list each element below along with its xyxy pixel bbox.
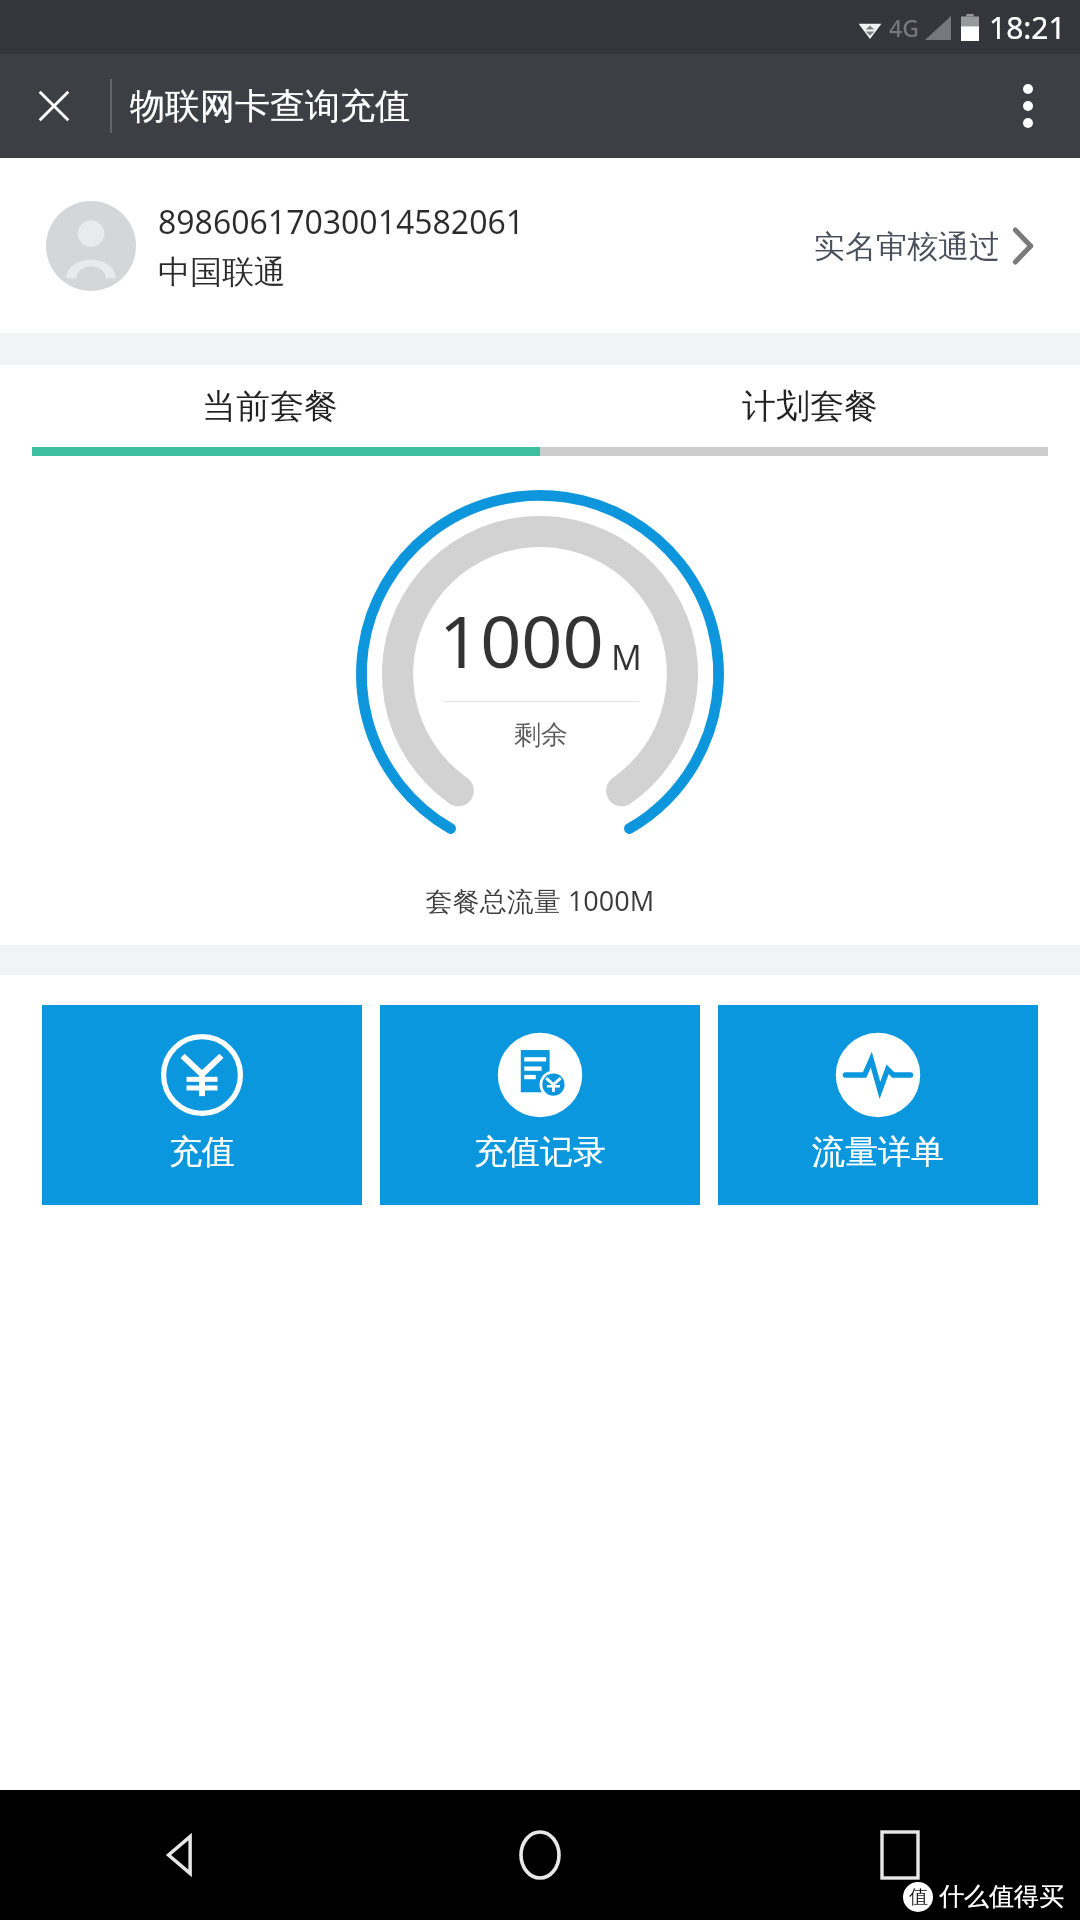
- button[interactable]: 当前套餐: [0, 365, 540, 447]
- staticText: 物联网卡查询充值: [130, 84, 410, 128]
- staticText: 实名审核通过: [814, 227, 1000, 266]
- staticText: 套餐总流量 1000M: [0, 882, 1080, 919]
- staticText: 4G: [889, 12, 919, 43]
- button[interactable]: 89860617030014582061: [0, 158, 1080, 333]
- staticText: 值: [909, 1885, 928, 1909]
- button[interactable]: 计划套餐: [540, 365, 1080, 447]
- staticText: 剩余: [514, 718, 568, 752]
- button[interactable]: 充值: [42, 1005, 362, 1205]
- staticText: 18:21: [989, 7, 1066, 48]
- button[interactable]: Back: [0, 1790, 360, 1920]
- staticText: 充值记录: [474, 1131, 606, 1173]
- staticText: 中国联通: [158, 252, 286, 292]
- staticText: 充值: [169, 1131, 235, 1173]
- staticText: M: [611, 634, 642, 680]
- button[interactable]: Home: [360, 1790, 720, 1920]
- button[interactable]: Close: [18, 70, 90, 142]
- button[interactable]: Recent apps: [720, 1790, 1080, 1920]
- staticText: 1000: [439, 591, 604, 689]
- staticText: 什么值得买: [939, 1881, 1064, 1912]
- button[interactable]: 流量详单: [718, 1005, 1038, 1205]
- button[interactable]: 充值记录: [380, 1005, 700, 1205]
- button[interactable]: More options: [990, 68, 1066, 144]
- staticText: 89860617030014582061: [158, 200, 525, 244]
- staticText: 计划套餐: [742, 385, 878, 428]
- staticText: 流量详单: [812, 1131, 944, 1173]
- staticText: 当前套餐: [202, 385, 338, 428]
